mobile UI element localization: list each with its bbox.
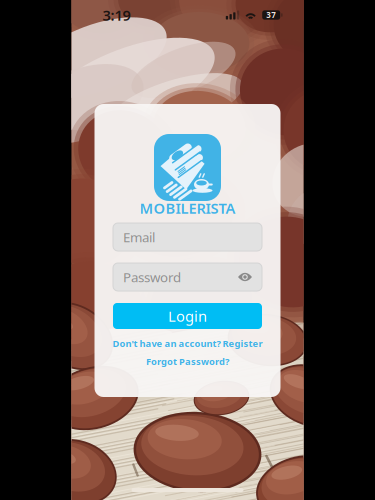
button[interactable]: Don't have an account? Register [107, 337, 267, 350]
button[interactable]: Forgot Password? [146, 355, 229, 368]
staticText: MOBILERISTA [139, 198, 235, 218]
staticText: Email [123, 228, 155, 246]
button[interactable]: Login [113, 303, 262, 329]
staticText: Don't have an account? Register [112, 337, 262, 350]
button[interactable]: Password [113, 263, 262, 291]
staticText: 3:19 [102, 5, 130, 25]
staticText: 37 [266, 10, 276, 20]
staticText: Login [168, 306, 207, 326]
staticText: Forgot Password? [146, 355, 229, 368]
button[interactable]: Email [113, 223, 262, 251]
staticText: Password [123, 268, 181, 286]
